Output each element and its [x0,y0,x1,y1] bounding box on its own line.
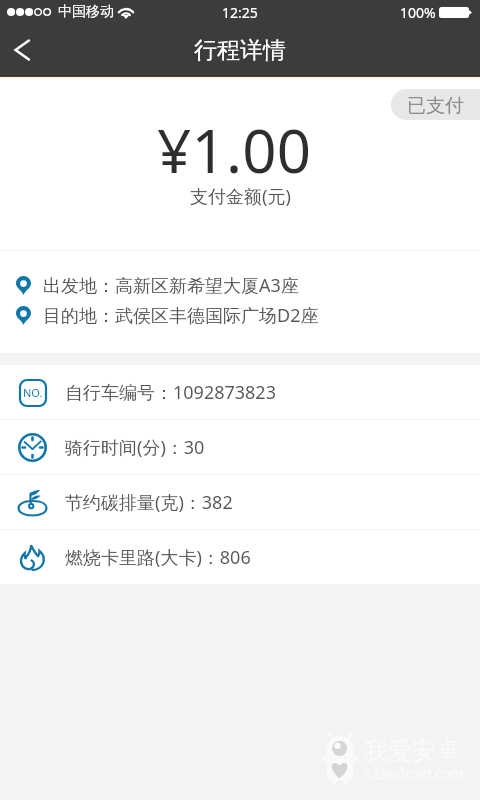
button[interactable]: 已支付 [391,89,480,120]
staticText: 节约碳排量(克)：382 [65,490,233,515]
staticText: 100% [400,3,436,22]
staticText: 骑行时间(分)：30 [65,435,205,460]
staticText: 出发地：高新区新希望大厦A3座 [43,273,299,298]
button[interactable]: 燃烧卡里路(大卡)：806 [0,530,480,584]
button[interactable]: 骑行时间(分)：30 [0,420,480,474]
button[interactable]: Back [0,28,44,72]
staticText: 中国移动 [58,3,114,21]
staticText: ¥1.00 [157,109,312,191]
button[interactable]: 节约碳排量(克)：382 [0,475,480,529]
staticText: 目的地：武侯区丰德国际广场D2座 [43,303,319,328]
staticText: 支付金额(元) [190,184,291,209]
staticText: NO. [23,385,43,400]
staticText: 自行车编号：1092873823 [65,380,276,405]
button[interactable]: NO. [0,365,480,419]
staticText: 行程详情 [194,36,286,65]
staticText: 燃烧卡里路(大卡)：806 [65,545,251,570]
staticText: 12:25 [222,3,258,22]
staticText: 已支付 [407,94,464,118]
